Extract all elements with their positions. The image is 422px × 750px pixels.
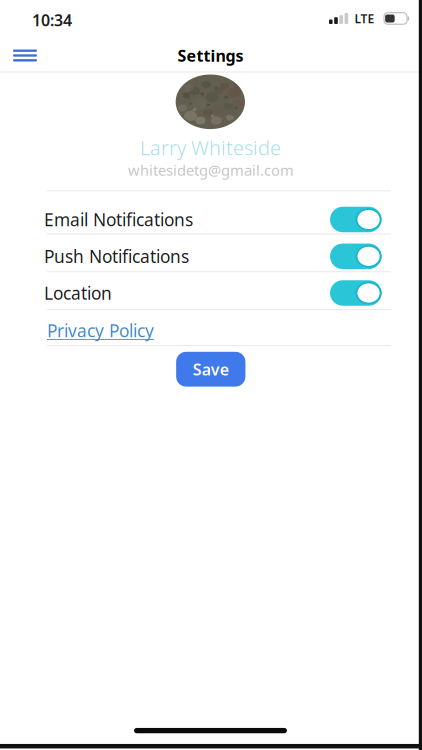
button[interactable]: Push Notifications: [330, 244, 381, 269]
button[interactable]: Menu: [13, 49, 37, 61]
staticText: Larry Whiteside: [140, 134, 281, 161]
staticText: Settings: [177, 45, 243, 66]
staticText: LTE: [354, 10, 374, 26]
button[interactable]: Location: [330, 280, 381, 306]
button[interactable]: Privacy Policy: [47, 319, 154, 342]
button[interactable]: Save: [176, 352, 245, 387]
staticText: Save: [193, 359, 229, 380]
staticText: Privacy Policy: [47, 319, 154, 342]
staticText: whitesidetg@gmail.com: [128, 160, 294, 180]
staticText: Location: [44, 281, 112, 304]
staticText: 10:34: [32, 9, 72, 31]
button[interactable]: Email Notifications: [330, 207, 381, 232]
staticText: Push Notifications: [44, 245, 189, 268]
staticText: Email Notifications: [44, 208, 193, 231]
